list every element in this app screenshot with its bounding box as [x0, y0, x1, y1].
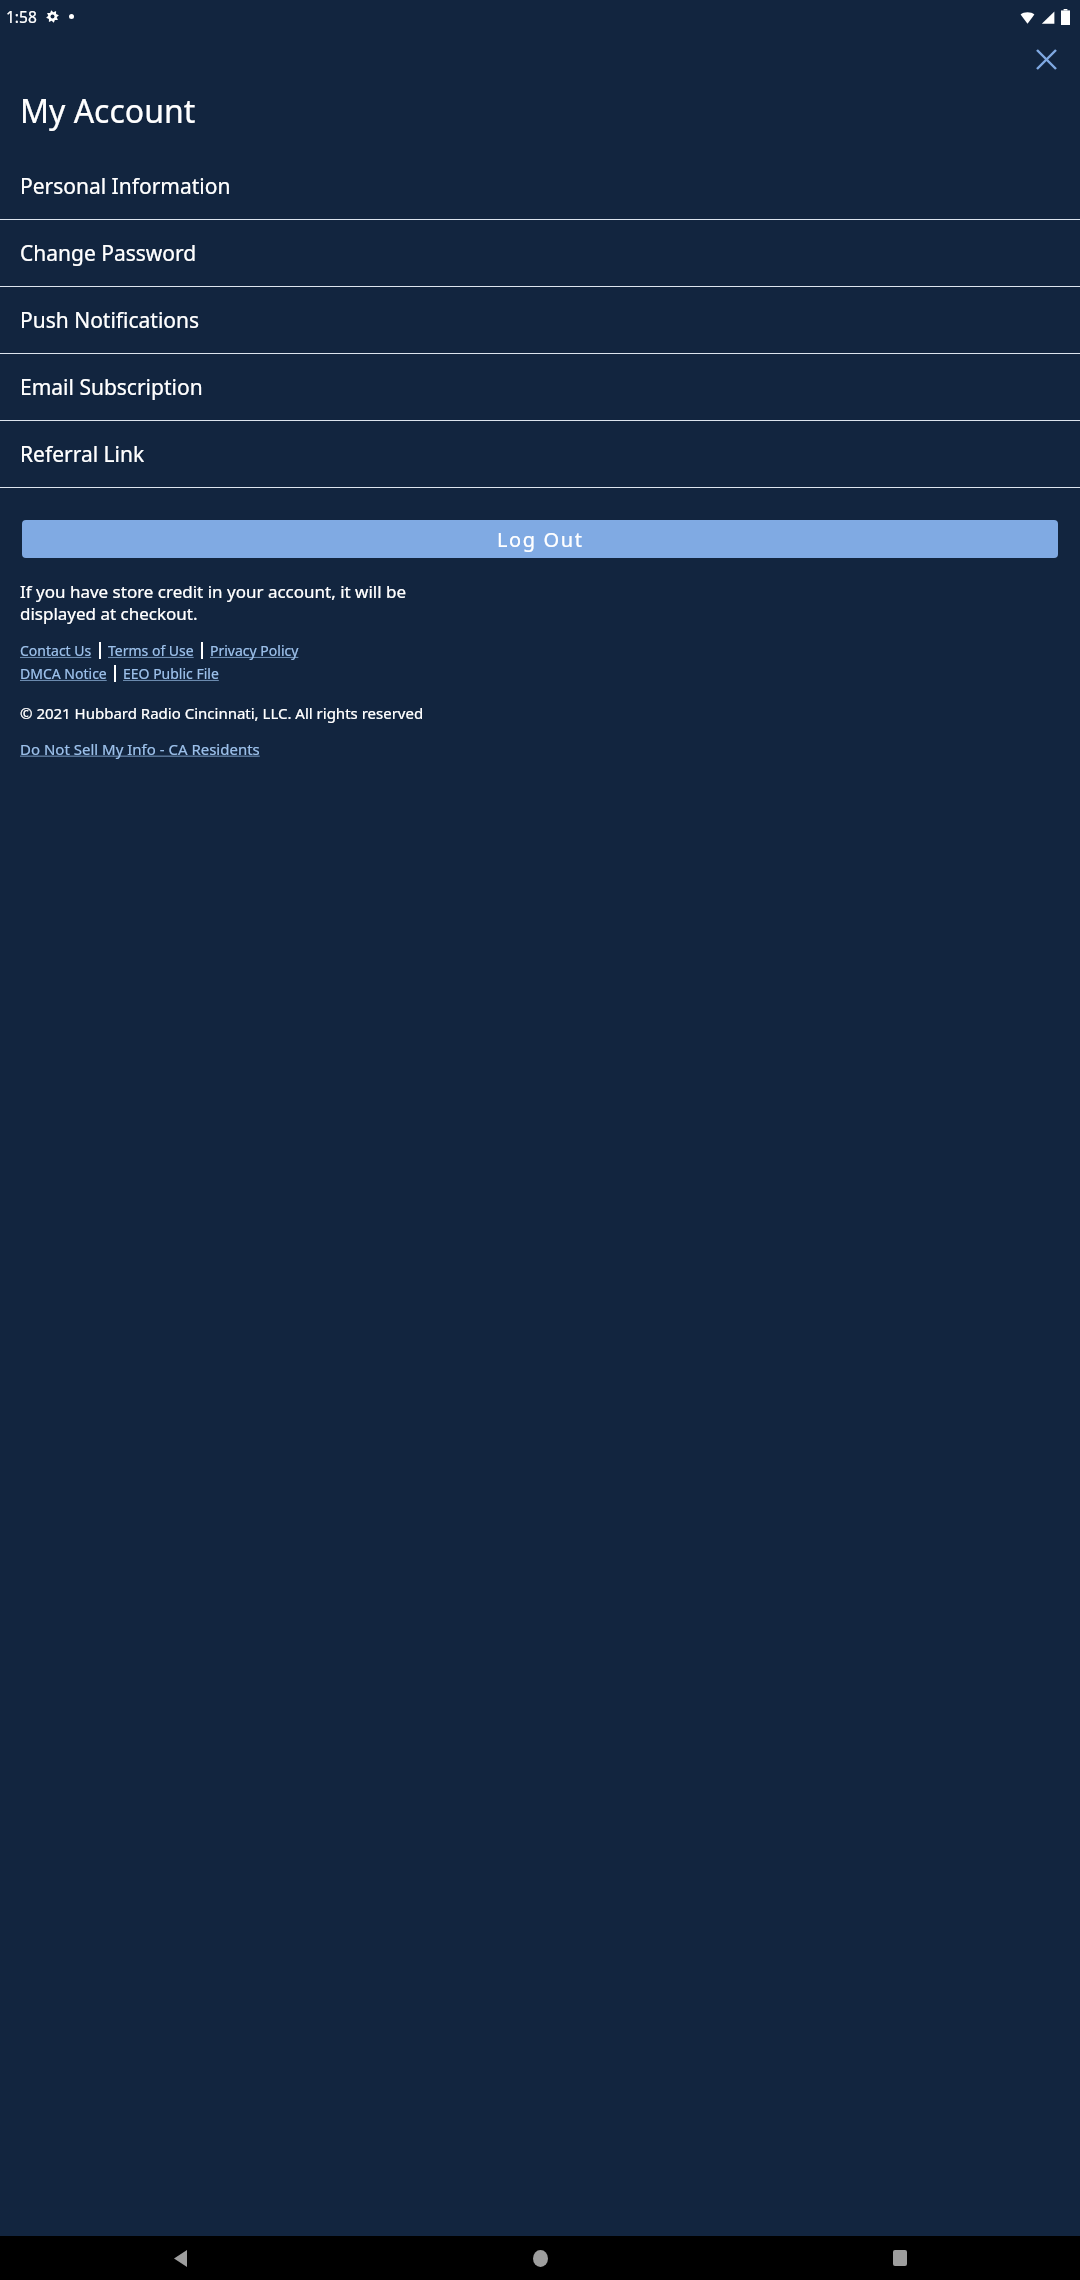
button[interactable]: Close: [1025, 38, 1067, 80]
staticText: EEO Public File: [123, 664, 219, 683]
staticText: Do Not Sell My Info - CA Residents: [20, 739, 260, 759]
staticText: DMCA Notice: [20, 664, 107, 683]
staticText: Log Out: [497, 526, 584, 553]
button[interactable]: Change Password: [0, 220, 1080, 286]
staticText: Email Subscription: [20, 373, 203, 402]
staticText: If you have store credit in your account…: [20, 580, 407, 625]
staticText: Change Password: [20, 239, 197, 268]
button[interactable]: Contact Us: [20, 641, 92, 660]
button[interactable]: Privacy Policy: [210, 641, 299, 660]
staticText: Push Notifications: [20, 306, 200, 335]
staticText: Contact Us: [20, 641, 92, 660]
button[interactable]: Log Out: [22, 520, 1058, 558]
button[interactable]: Back: [0, 2236, 360, 2280]
staticText: Terms of Use: [108, 641, 194, 660]
staticText: Referral Link: [20, 440, 145, 469]
button[interactable]: Do Not Sell My Info - CA Residents: [20, 739, 260, 759]
staticText: Personal Information: [20, 172, 231, 201]
staticText: 1:58: [6, 6, 37, 27]
staticText: My Account: [20, 89, 196, 133]
button[interactable]: Home: [360, 2236, 720, 2280]
button[interactable]: Recent apps: [720, 2236, 1080, 2280]
button[interactable]: EEO Public File: [123, 664, 219, 683]
button[interactable]: Push Notifications: [0, 287, 1080, 353]
staticText: Privacy Policy: [210, 641, 299, 660]
staticText: © 2021 Hubbard Radio Cincinnati, LLC. Al…: [20, 703, 424, 723]
button[interactable]: Terms of Use: [108, 641, 194, 660]
button[interactable]: Referral Link: [0, 421, 1080, 487]
button[interactable]: DMCA Notice: [20, 664, 107, 683]
button[interactable]: Personal Information: [0, 153, 1080, 219]
button[interactable]: Email Subscription: [0, 354, 1080, 420]
